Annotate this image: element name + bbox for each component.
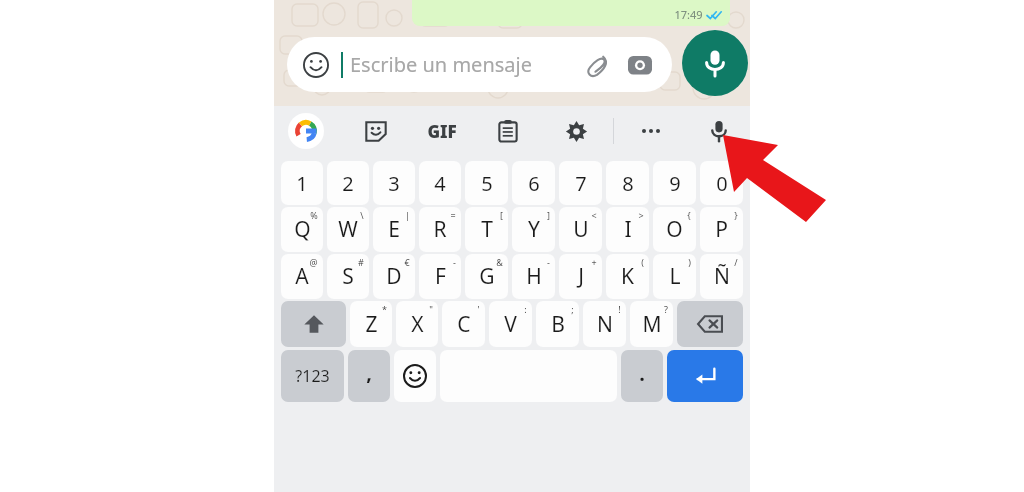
button[interactable]: S (327, 254, 369, 299)
staticText: H (526, 262, 542, 291)
staticText: 8 (622, 170, 634, 197)
staticText: " (429, 303, 433, 315)
button[interactable]: 0 (700, 161, 743, 205)
button[interactable]: 2 (327, 161, 369, 205)
staticText: \ (360, 209, 364, 221)
button[interactable]: Record voice message (682, 30, 748, 96)
staticText: € (404, 256, 410, 268)
staticText: 9 (669, 170, 681, 197)
button[interactable]: Attach (580, 47, 616, 83)
staticText: F (435, 262, 446, 291)
button[interactable]: K (606, 254, 649, 299)
button[interactable]: ?123 (281, 350, 344, 402)
button[interactable]: Y (512, 207, 555, 252)
button[interactable]: F (419, 254, 461, 299)
staticText: W (338, 215, 358, 244)
staticText: ] (547, 209, 550, 221)
button[interactable]: P (700, 207, 743, 252)
button[interactable]: N (583, 301, 626, 347)
staticText: 5 (481, 170, 493, 197)
button[interactable]: D (373, 254, 415, 299)
button[interactable]: 5 (465, 161, 508, 205)
staticText: > (638, 209, 644, 221)
staticText: 4 (434, 170, 446, 197)
button[interactable]: B (536, 301, 579, 347)
button[interactable]: M (630, 301, 673, 347)
staticText: M (642, 310, 662, 339)
staticText: 3 (388, 170, 400, 197)
staticText: 7 (575, 170, 587, 197)
button[interactable]: E (373, 207, 415, 252)
button[interactable]: 3 (373, 161, 415, 205)
staticText: < (591, 209, 597, 221)
button[interactable]: Stickers (359, 114, 393, 148)
staticText: C (457, 310, 471, 339)
staticText: & (496, 256, 503, 268)
staticText: X (411, 310, 424, 339)
staticText: Y (528, 215, 540, 244)
staticText: ?123 (295, 365, 330, 387)
staticText: N (597, 310, 613, 339)
button[interactable]: 7 (559, 161, 602, 205)
staticText: ; (571, 303, 574, 315)
staticText: D (386, 262, 402, 291)
button[interactable]: Emoji keyboard (394, 350, 436, 402)
staticText: - (547, 256, 550, 268)
button[interactable]: Q (281, 207, 323, 252)
button[interactable]: U (559, 207, 602, 252)
button[interactable]: Google search (288, 113, 324, 149)
button[interactable]: R (419, 207, 461, 252)
staticText: GIF (427, 120, 457, 143)
button[interactable]: O (653, 207, 696, 252)
button[interactable]: Enter (667, 350, 743, 402)
button[interactable]: H (512, 254, 555, 299)
button[interactable]: Z (350, 301, 392, 347)
staticText: [ (500, 209, 503, 221)
staticText: G (479, 262, 495, 291)
button[interactable]: X (396, 301, 438, 347)
button[interactable]: Comma (348, 350, 390, 402)
staticText: S (342, 262, 354, 291)
button[interactable]: L (653, 254, 696, 299)
staticText: ) (688, 256, 691, 268)
staticText: E (388, 215, 400, 244)
button[interactable]: V (489, 301, 532, 347)
button[interactable]: Backspace (677, 301, 743, 347)
button[interactable]: Settings (559, 114, 593, 148)
staticText: Ñ (714, 262, 730, 291)
staticText: . (639, 360, 645, 387)
staticText: = (450, 209, 456, 221)
button[interactable]: 9 (653, 161, 696, 205)
button[interactable]: W (327, 207, 369, 252)
button[interactable]: More options (634, 114, 668, 148)
button[interactable]: Emoji (301, 50, 331, 80)
staticText: K (621, 262, 634, 291)
button[interactable]: Shift (281, 301, 346, 347)
staticText: % (310, 209, 318, 221)
button[interactable]: Camera (622, 47, 658, 83)
button[interactable]: Emoji (287, 37, 672, 92)
button[interactable]: 1 (281, 161, 323, 205)
button[interactable]: J (559, 254, 602, 299)
button[interactable]: GIF (427, 114, 457, 148)
button[interactable]: I (606, 207, 649, 252)
staticText: ' (477, 303, 480, 315)
button[interactable]: Clipboard (491, 114, 525, 148)
button[interactable]: 6 (512, 161, 555, 205)
button[interactable]: Voice input (702, 114, 736, 148)
staticText: 0 (716, 170, 728, 197)
staticText: B (551, 310, 565, 339)
staticText: ( (641, 256, 644, 268)
staticText: / (734, 256, 738, 268)
button[interactable]: Period (621, 350, 663, 402)
button[interactable]: Ñ (700, 254, 743, 299)
button[interactable]: T (465, 207, 508, 252)
button[interactable]: G (465, 254, 508, 299)
button[interactable]: 8 (606, 161, 649, 205)
button[interactable]: 4 (419, 161, 461, 205)
staticText: L (669, 262, 681, 291)
staticText: @ (309, 256, 318, 268)
button[interactable]: A (281, 254, 323, 299)
button[interactable]: C (442, 301, 485, 347)
